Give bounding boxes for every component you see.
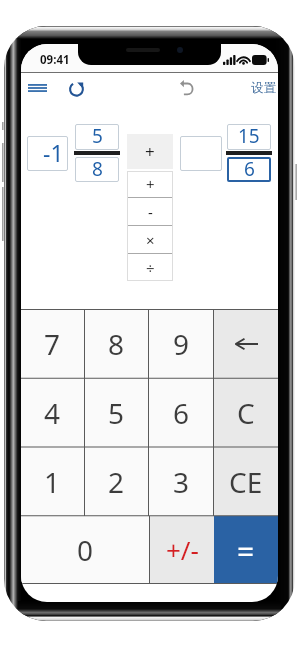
- button[interactable]: 5: [85, 378, 148, 447]
- staticText: 6: [244, 156, 255, 181]
- staticText: 5: [92, 123, 103, 149]
- staticText: 9: [173, 325, 190, 363]
- button[interactable]: -1: [27, 136, 68, 171]
- staticText: +: [146, 174, 155, 194]
- staticText: 8: [108, 325, 125, 363]
- button[interactable]: 15: [227, 124, 271, 150]
- button[interactable]: C: [214, 378, 278, 447]
- staticText: 7: [44, 325, 61, 363]
- button[interactable]: Menu: [22, 74, 52, 102]
- button[interactable]: CE: [214, 447, 278, 516]
- button[interactable]: Backspace: [214, 309, 278, 378]
- staticText: 5: [108, 394, 125, 432]
- staticText: C: [237, 394, 255, 432]
- staticText: -: [148, 202, 153, 222]
- button[interactable]: 3: [149, 447, 213, 516]
- button[interactable]: [180, 136, 222, 171]
- staticText: 09:41: [40, 52, 70, 68]
- staticText: -1: [43, 137, 64, 168]
- staticText: +: [145, 140, 155, 163]
- button[interactable]: Redo: [61, 74, 91, 103]
- staticText: ×: [146, 230, 155, 250]
- button[interactable]: 5: [75, 124, 119, 150]
- button[interactable]: 2: [85, 447, 148, 516]
- button[interactable]: 9: [149, 309, 213, 378]
- button[interactable]: 4: [21, 378, 84, 447]
- button[interactable]: 8: [85, 309, 148, 378]
- button[interactable]: 6: [227, 157, 271, 182]
- button[interactable]: 8: [75, 157, 119, 182]
- button[interactable]: 0: [21, 516, 149, 584]
- button[interactable]: +: [127, 171, 173, 197]
- staticText: CE: [229, 463, 263, 501]
- button[interactable]: Undo: [172, 74, 200, 102]
- staticText: 6: [173, 394, 190, 432]
- button[interactable]: =: [214, 516, 278, 584]
- staticText: =: [237, 531, 255, 572]
- button[interactable]: -: [127, 198, 173, 225]
- staticText: 4: [44, 394, 61, 432]
- button[interactable]: ÷: [127, 254, 173, 281]
- button[interactable]: +: [127, 134, 173, 169]
- button[interactable]: 7: [21, 309, 84, 378]
- staticText: 3: [173, 463, 190, 501]
- staticText: 15: [238, 123, 260, 149]
- staticText: 0: [77, 531, 94, 569]
- button[interactable]: ×: [127, 226, 173, 253]
- staticText: +/-: [166, 532, 199, 567]
- staticText: ÷: [146, 258, 155, 278]
- staticText: 8: [92, 156, 103, 181]
- button[interactable]: 设置: [244, 74, 278, 102]
- button[interactable]: 1: [21, 447, 84, 516]
- button[interactable]: 6: [149, 378, 213, 447]
- button[interactable]: +/-: [150, 516, 214, 584]
- staticText: 2: [108, 463, 125, 501]
- staticText: 1: [44, 463, 61, 501]
- staticText: 设置: [251, 80, 276, 96]
